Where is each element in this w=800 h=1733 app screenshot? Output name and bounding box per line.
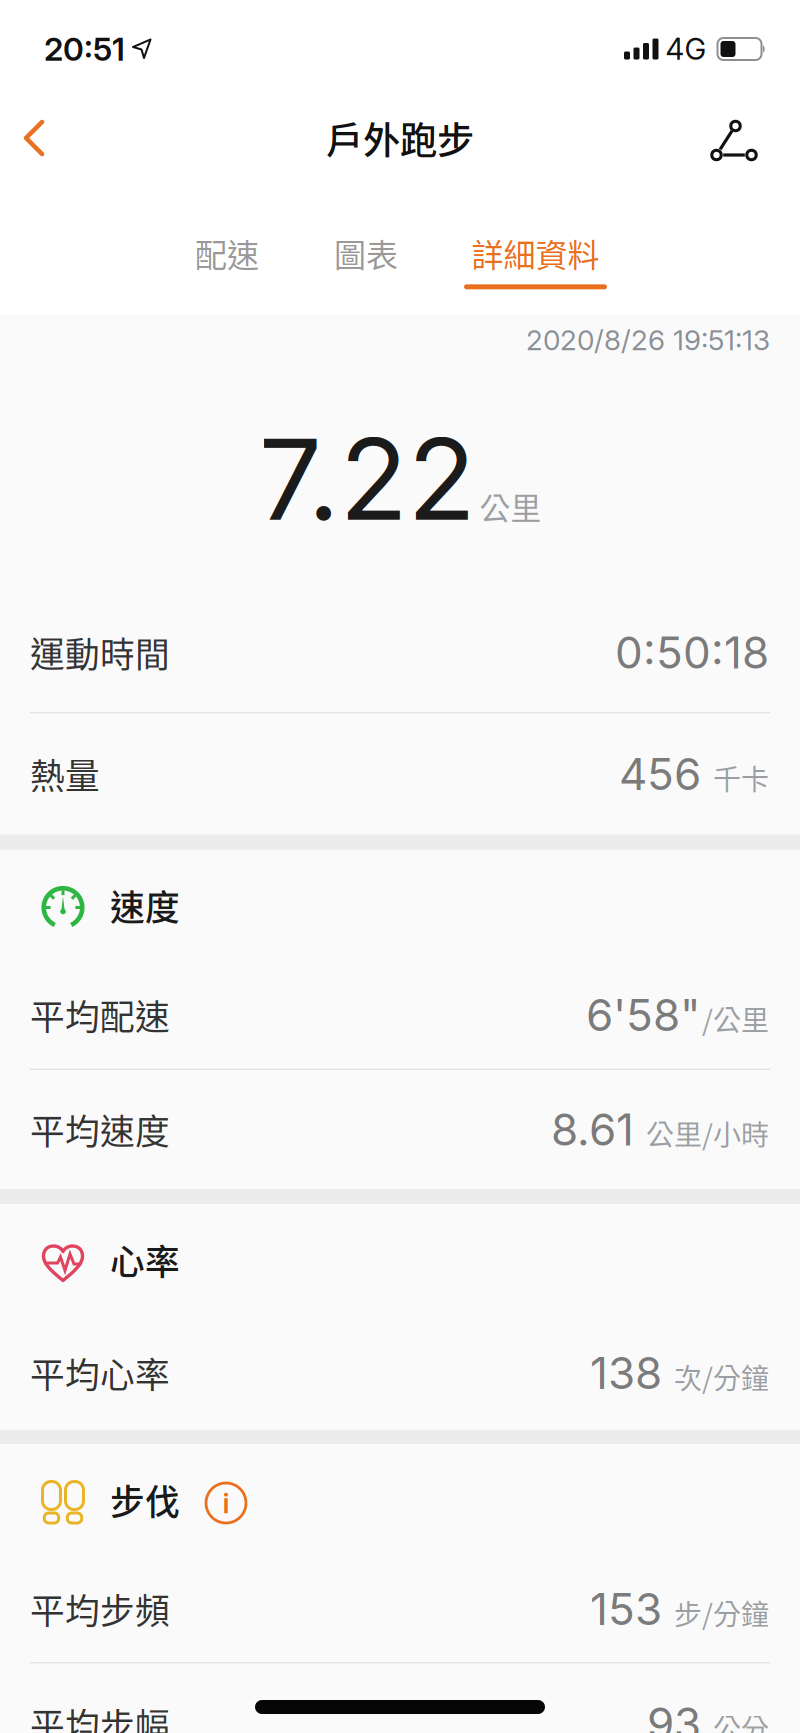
staticText: 熱量 (30, 749, 100, 799)
staticText: 公里/小時 (646, 1113, 769, 1153)
staticText: 運動時間 (30, 627, 170, 678)
staticText: 8.61 (551, 1103, 634, 1156)
staticText: 次/分鐘 (674, 1356, 769, 1397)
staticText: /公里 (702, 998, 769, 1039)
staticText: 153 (590, 1582, 662, 1636)
staticText: 配速 (195, 230, 259, 276)
staticText: 4G (665, 31, 706, 67)
button[interactable]: Share workout (711, 117, 800, 159)
staticText: 步/分鐘 (674, 1592, 769, 1633)
staticText: 平均配速 (30, 990, 170, 1040)
staticText: 7.22 (258, 411, 475, 547)
staticText: 千卡 (713, 757, 769, 798)
button[interactable]: Back (0, 119, 65, 156)
staticText: 公里 (479, 484, 541, 529)
staticText: 456 (619, 747, 701, 801)
button[interactable]: 配速 (186, 230, 268, 289)
staticText: i (222, 1486, 229, 1520)
staticText: 平均速度 (30, 1104, 170, 1155)
staticText: 詳細資料 (471, 230, 599, 276)
staticText: 公分 (713, 1707, 769, 1733)
staticText: 138 (590, 1346, 662, 1400)
staticText: 步伐 (110, 1475, 180, 1525)
button[interactable]: 詳細資料 (464, 230, 607, 289)
staticText: 20:51 (44, 30, 125, 68)
button[interactable]: About cadence (206, 1480, 246, 1520)
staticText: 平均步頻 (30, 1584, 170, 1634)
staticText: 93 (647, 1697, 701, 1733)
staticText: 0:50:18 (615, 626, 769, 679)
staticText: 2020/8/26 19:51:13 (526, 323, 770, 357)
staticText: 圖表 (334, 230, 398, 276)
staticText: 平均步幅 (30, 1698, 170, 1733)
button[interactable]: 圖表 (326, 230, 406, 289)
staticText: 速度 (110, 880, 180, 931)
staticText: 6'58" (586, 988, 700, 1042)
staticText: 心率 (110, 1235, 180, 1285)
staticText: 戶外跑步 (326, 111, 474, 165)
staticText: 平均心率 (30, 1348, 170, 1398)
